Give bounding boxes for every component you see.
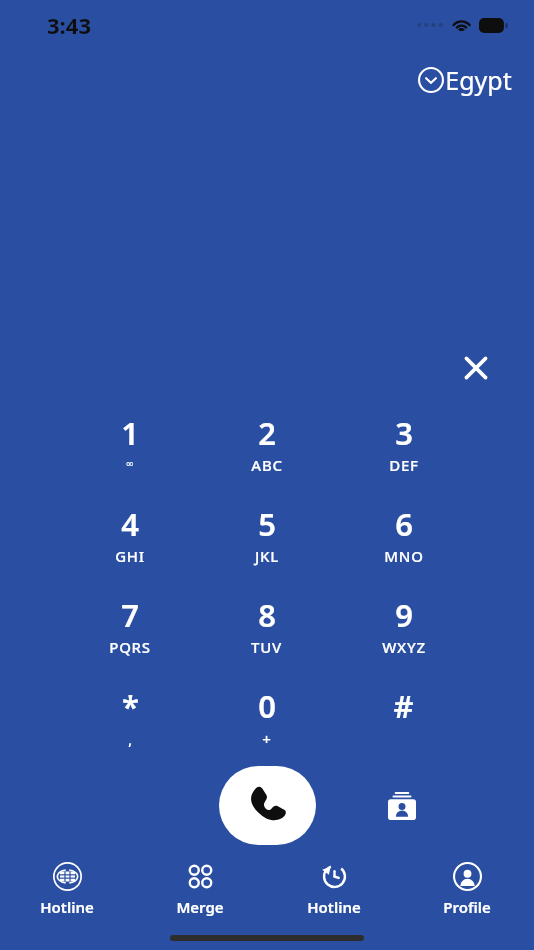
button[interactable]: Call [219,766,316,845]
staticText: 8 [258,594,276,636]
button[interactable]: Merge [150,861,250,918]
button[interactable]: 2 [198,412,335,480]
button[interactable]: Hotline [284,861,384,918]
button[interactable]: Contacts [379,783,425,829]
staticText: MNO [384,546,424,566]
staticText: PQRS [109,637,151,657]
button[interactable]: * [62,685,198,753]
staticText: Hotline [307,897,361,917]
staticText: 9 [395,594,413,636]
staticText: 4 [121,503,139,545]
button[interactable]: 0 [198,685,335,753]
staticText: , [128,730,133,749]
staticText: Hotline [40,897,94,917]
staticText: # [393,685,414,727]
button[interactable]: # [335,685,472,753]
staticText: 1 [121,412,139,454]
staticText: 0 [258,685,276,727]
staticText: Merge [176,897,224,917]
staticText: 3:43 [47,10,91,40]
button[interactable]: 4 [62,503,198,571]
button[interactable]: Profile [417,861,517,918]
staticText: 7 [121,594,139,636]
staticText: WXYZ [382,637,426,657]
staticText: ABC [251,455,283,475]
staticText: Egypt [445,63,512,97]
button[interactable]: Clear [448,340,504,396]
staticText: JKL [255,546,279,566]
staticText: 3 [395,412,413,454]
button[interactable]: 6 [335,503,472,571]
button[interactable]: 5 [198,503,335,571]
button[interactable]: 8 [198,594,335,662]
button[interactable]: Egypt [416,60,514,100]
button[interactable]: 7 [62,594,198,662]
staticText: 2 [258,412,276,454]
staticText: Profile [443,897,491,917]
staticText: TUV [251,637,282,657]
staticText: 6 [395,503,413,545]
button[interactable]: 3 [335,412,472,480]
button[interactable]: Hotline [17,861,117,918]
button[interactable]: 1 [62,412,198,480]
staticText: 5 [258,503,276,545]
staticText: * [122,685,139,727]
staticText: + [262,729,272,749]
staticText: GHI [115,546,145,566]
staticText: DEF [389,455,419,475]
button[interactable]: 9 [335,594,472,662]
staticText: ∞ [125,458,135,470]
